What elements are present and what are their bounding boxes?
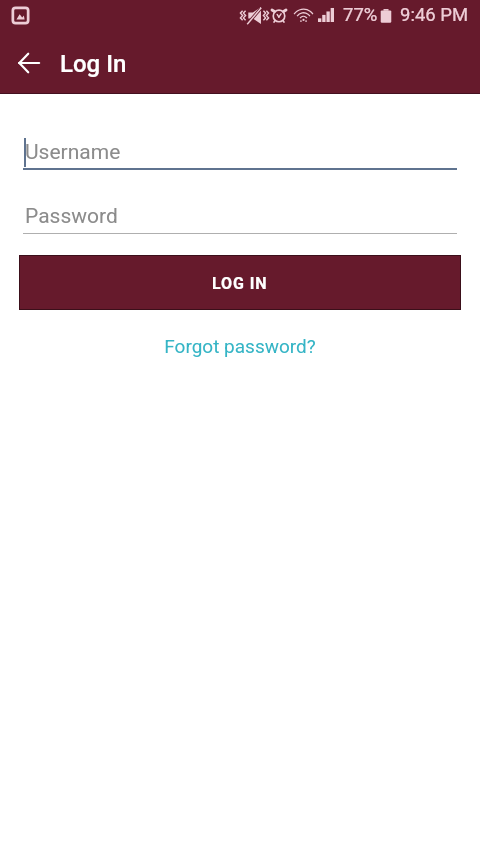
button[interactable]: Forgot password? [152,329,328,363]
staticText: LOG IN [212,274,268,293]
button[interactable]: LOG IN [20,256,460,309]
staticText: Log In [60,50,127,78]
button[interactable]: Back [4,39,52,87]
button[interactable]: Username [23,136,457,170]
staticText: 77% [343,4,378,26]
staticText: Username [25,140,121,165]
button[interactable]: Password [23,200,457,234]
staticText: Password [25,204,118,229]
staticText: 9:46 PM [400,4,469,26]
